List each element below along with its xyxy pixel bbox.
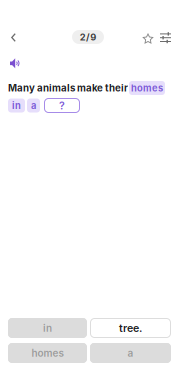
staticText: a bbox=[127, 347, 133, 359]
button[interactable]: Play audio bbox=[5, 55, 26, 72]
staticText: a bbox=[31, 100, 36, 111]
button[interactable]: homes bbox=[8, 343, 87, 363]
button[interactable]: Settings bbox=[158, 26, 173, 48]
staticText: homes bbox=[131, 82, 163, 94]
staticText: ? bbox=[59, 99, 65, 112]
button[interactable]: Favorite bbox=[138, 26, 158, 48]
staticText: in bbox=[12, 100, 21, 111]
staticText: tree. bbox=[119, 321, 142, 334]
button[interactable]: in bbox=[8, 318, 87, 338]
button[interactable]: Back bbox=[11, 26, 33, 48]
staticText: homes bbox=[31, 347, 63, 359]
button[interactable]: tree. bbox=[90, 318, 171, 338]
staticText: 2/9 bbox=[80, 31, 96, 43]
staticText: Many animals make their bbox=[8, 82, 128, 94]
button[interactable]: a bbox=[90, 343, 171, 363]
staticText: in bbox=[43, 322, 52, 334]
